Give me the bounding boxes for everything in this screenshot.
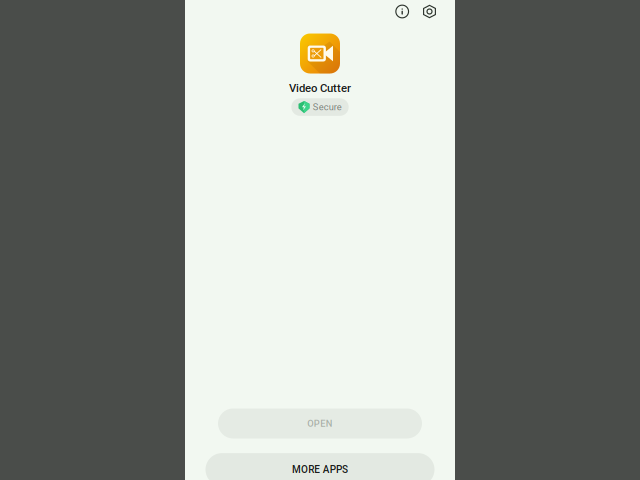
button[interactable]: Settings (419, 1, 439, 21)
staticText: MORE APPS (292, 464, 348, 475)
button[interactable]: MORE APPS (205, 453, 434, 480)
staticText: Secure (313, 102, 342, 112)
staticText: Video Cutter (289, 81, 351, 95)
staticText: OPEN (307, 418, 333, 429)
button[interactable]: OPEN (218, 408, 422, 438)
button[interactable]: Info (392, 1, 412, 21)
